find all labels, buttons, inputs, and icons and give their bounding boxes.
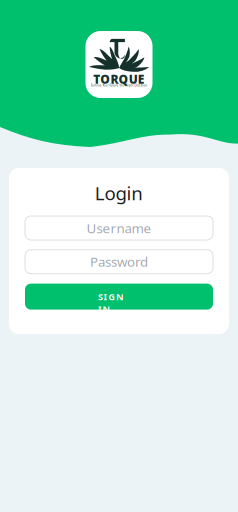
button[interactable]: SIGN IN	[25, 284, 213, 310]
button[interactable]: Password	[25, 250, 213, 274]
staticText: Turning Your Future the Right Direction	[90, 84, 147, 87]
staticText: Password	[90, 253, 148, 270]
staticText: SIGN IN	[98, 290, 140, 303]
staticText: Login	[95, 181, 143, 205]
button[interactable]: Username	[25, 216, 213, 240]
staticText: TORQUE	[93, 71, 145, 87]
staticText: Username	[86, 219, 151, 237]
